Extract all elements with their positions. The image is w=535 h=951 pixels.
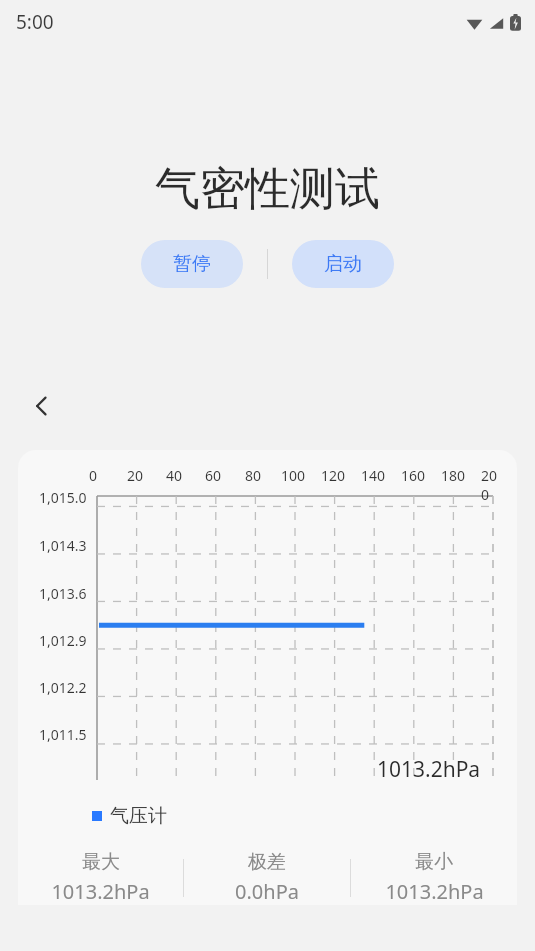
staticText: 60 — [205, 466, 222, 485]
staticText: 启动 — [324, 252, 362, 276]
staticText: 20 — [127, 466, 144, 485]
staticText: 1,011.5 — [39, 725, 87, 744]
staticText: 1013.2hPa — [51, 878, 150, 905]
staticText: 1,013.6 — [39, 584, 87, 603]
button[interactable]: 启动 — [292, 240, 394, 288]
staticText: 160 — [401, 466, 426, 485]
staticText: 1,012.9 — [39, 631, 87, 650]
staticText: 1013.2hPa — [377, 755, 481, 784]
button[interactable]: 最小 — [351, 850, 517, 905]
staticText: 180 — [441, 466, 466, 485]
staticText: 80 — [245, 466, 262, 485]
staticText: 200 — [481, 466, 501, 504]
button[interactable]: 暂停 — [141, 240, 243, 288]
button[interactable]: Back — [20, 384, 64, 428]
staticText: 气密性测试 — [155, 161, 380, 218]
staticText: 1,015.0 — [39, 488, 87, 507]
button[interactable]: 极差 — [184, 850, 350, 905]
staticText: 100 — [281, 466, 306, 485]
staticText: 5:00 — [16, 9, 54, 35]
staticText: 最大 — [82, 850, 120, 874]
staticText: 1,012.2 — [39, 678, 87, 697]
staticText: 120 — [321, 466, 346, 485]
staticText: 暂停 — [173, 252, 211, 276]
staticText: 1013.2hPa — [385, 878, 484, 905]
staticText: 极差 — [248, 850, 286, 874]
staticText: 气压计 — [110, 804, 167, 828]
staticText: 1,014.3 — [39, 536, 87, 555]
button[interactable]: 最大 — [18, 850, 183, 905]
staticText: 0.0hPa — [235, 878, 299, 905]
staticText: 140 — [361, 466, 386, 485]
staticText: 0 — [89, 466, 98, 485]
staticText: 最小 — [415, 850, 453, 874]
staticText: 40 — [166, 466, 183, 485]
